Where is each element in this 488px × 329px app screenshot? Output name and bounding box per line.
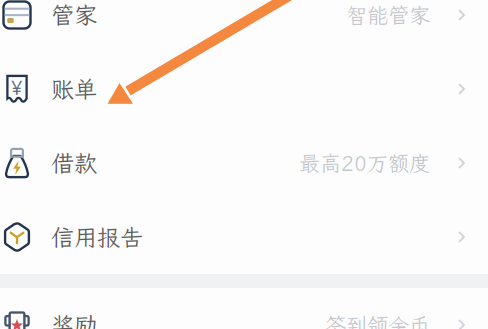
button[interactable]: 奖励: [0, 288, 488, 329]
staticText: 管家: [51, 0, 97, 30]
button[interactable]: 借款: [0, 126, 488, 200]
staticText: ¥: [11, 74, 22, 100]
button[interactable]: ¥: [0, 52, 488, 126]
button[interactable]: 管家: [0, 0, 488, 52]
button[interactable]: 信用报告: [0, 200, 488, 274]
staticText: 最高20万额度: [299, 149, 430, 177]
staticText: 信用报告: [51, 222, 143, 252]
staticText: 账单: [51, 74, 97, 104]
staticText: 签到领金币: [325, 311, 430, 329]
staticText: 智能管家: [346, 1, 430, 29]
staticText: 借款: [51, 148, 97, 178]
staticText: 奖励: [51, 310, 97, 329]
